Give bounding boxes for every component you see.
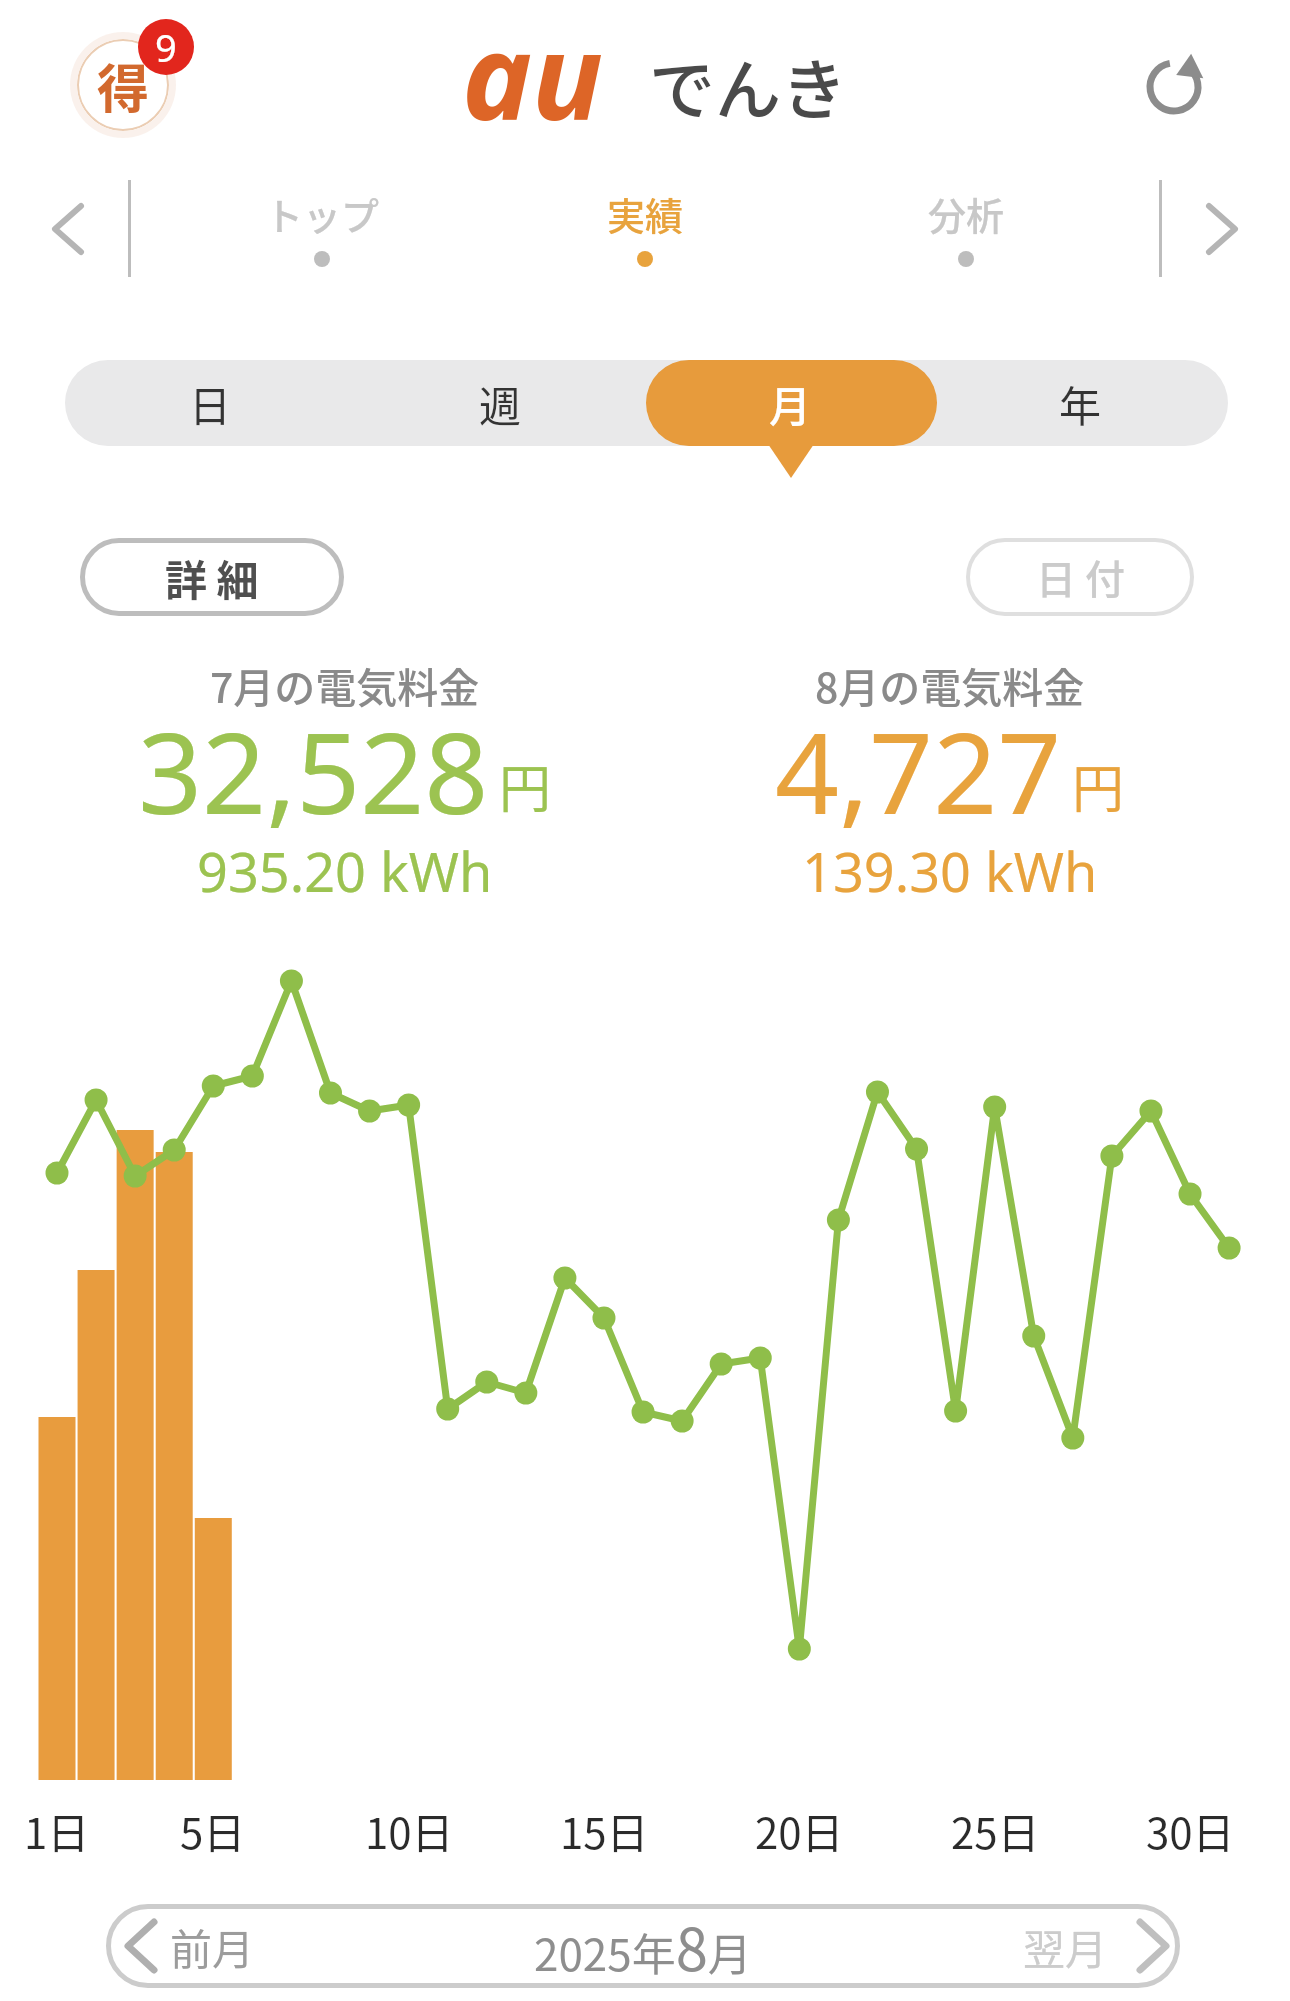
staticText: 年 (1059, 373, 1102, 434)
staticText: 4,727 (775, 694, 1062, 847)
button[interactable]: 実績 (515, 186, 775, 278)
staticText: トップ (265, 186, 380, 241)
button[interactable]: 年 (935, 360, 1225, 446)
staticText: 翌月 (1023, 1916, 1108, 1977)
staticText: 20日 (755, 1800, 844, 1856)
button[interactable]: 週 (355, 360, 645, 446)
staticText: 8月の電気料金 (815, 655, 1085, 714)
staticText: 2025年8月 (534, 1904, 752, 1988)
staticText: 前月 (170, 1916, 255, 1977)
button[interactable]: 日 (65, 360, 355, 446)
button[interactable] (55, 206, 81, 252)
button[interactable]: 詳 細 (80, 538, 344, 616)
staticText: 詳 細 (165, 547, 259, 608)
staticText: 週 (479, 373, 522, 434)
staticText: 月 (769, 373, 812, 434)
button[interactable]: 日 付 (966, 538, 1194, 616)
staticText: 日 付 (1036, 548, 1125, 606)
button[interactable]: 前月 (128, 1904, 388, 1988)
staticText: 935.20 kWh (197, 834, 493, 908)
staticText: 日 (189, 373, 232, 434)
staticText: 10日 (365, 1800, 454, 1856)
staticText: 得 (97, 48, 150, 123)
staticText: 円 (499, 748, 552, 823)
button[interactable]: 分析 (836, 186, 1096, 278)
button[interactable]: 月 (645, 360, 935, 446)
button[interactable] (1209, 206, 1235, 252)
button[interactable]: 得 (74, 36, 194, 146)
staticText: au (462, 0, 604, 155)
staticText: 5日 (180, 1800, 246, 1856)
staticText: でんき (649, 37, 847, 133)
staticText: 15日 (560, 1800, 649, 1856)
staticText: 32,528 (138, 694, 489, 847)
button[interactable]: 翌月 (920, 1904, 1166, 1988)
button[interactable]: トップ (192, 186, 452, 278)
staticText: 1日 (24, 1800, 90, 1856)
staticText: 139.30 kWh (802, 834, 1098, 908)
staticText: 30日 (1146, 1800, 1235, 1856)
button[interactable] (1144, 57, 1204, 117)
staticText: 円 (1072, 748, 1125, 823)
staticText: 実績 (607, 186, 684, 241)
staticText: 9 (155, 21, 177, 73)
staticText: 分析 (928, 186, 1005, 241)
staticText: 7月の電気料金 (210, 655, 480, 714)
staticText: 25日 (951, 1800, 1040, 1856)
